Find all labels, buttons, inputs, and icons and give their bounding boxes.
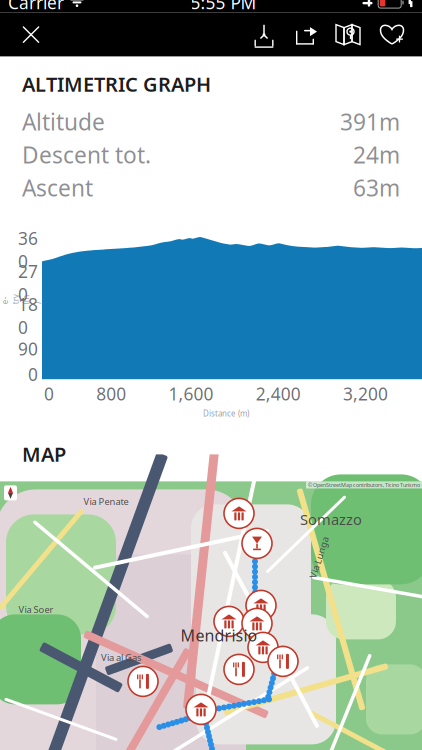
- button[interactable]: Close: [8, 14, 54, 56]
- staticText: 24m: [353, 140, 400, 170]
- staticText: 1,600: [168, 382, 213, 405]
- staticText: 3,200: [343, 382, 388, 405]
- button[interactable]: Map: [326, 16, 370, 54]
- staticText: Distance (m): [203, 408, 249, 419]
- button[interactable]: Add to favourites: [370, 15, 414, 55]
- staticText: 360: [18, 227, 38, 273]
- staticText: 90: [18, 337, 38, 360]
- staticText: 0: [28, 363, 38, 386]
- staticText: 180: [18, 293, 38, 339]
- staticText: Ascent: [22, 173, 93, 203]
- staticText: 5:55 PM: [190, 0, 256, 14]
- button[interactable]: Download: [244, 15, 284, 55]
- staticText: 800: [96, 382, 126, 405]
- staticText: Altimetry (m): [0, 262, 10, 336]
- staticText: Via Lunga: [297, 551, 340, 564]
- staticText: Somazzo: [300, 510, 362, 529]
- staticText: 270: [18, 260, 38, 306]
- staticText: Descent tot.: [22, 140, 151, 170]
- staticText: Altitude: [22, 107, 105, 137]
- staticText: 0: [44, 382, 54, 405]
- staticText: 391m: [340, 107, 400, 137]
- staticText: Via Penate: [83, 495, 128, 508]
- staticText: 2,400: [256, 382, 301, 405]
- staticText: © OpenStreetMap contributors, Ticino Tur…: [308, 481, 420, 488]
- staticText: Via Soer: [18, 603, 53, 616]
- staticText: Mendrisio: [180, 625, 257, 646]
- staticText: ALTIMETRIC GRAPH: [22, 71, 211, 97]
- staticText: MAP: [22, 441, 66, 467]
- button[interactable]: Share: [284, 15, 326, 55]
- staticText: 63m: [353, 173, 400, 203]
- staticText: Carrier: [8, 0, 64, 14]
- staticText: Via al Gas: [101, 651, 141, 664]
